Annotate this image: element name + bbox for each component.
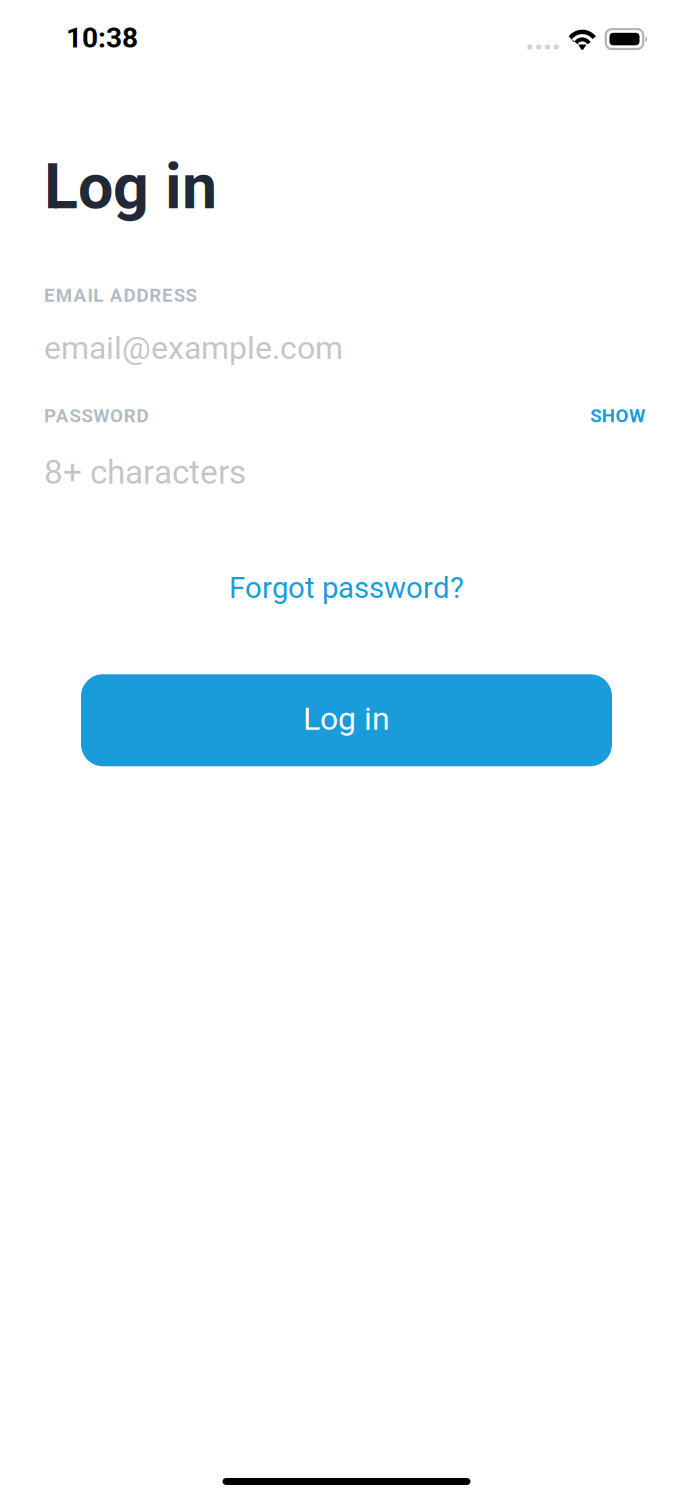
button[interactable]: SHOW <box>590 405 645 427</box>
button[interactable]: 8+ characters <box>44 453 649 492</box>
staticText: Forgot password? <box>229 571 464 605</box>
staticText: Log in <box>303 700 390 737</box>
staticText: Log in <box>44 150 217 223</box>
staticText: email@example.com <box>44 329 343 367</box>
staticText: 10:38 <box>66 22 138 54</box>
staticText: 8+ characters <box>44 453 246 492</box>
staticText: EMAIL ADDRESS <box>44 284 197 306</box>
button[interactable]: EMAIL ADDRESS <box>44 284 649 367</box>
button[interactable]: Forgot password? <box>44 571 649 605</box>
staticText: PASSWORD <box>44 405 149 427</box>
button[interactable]: Log in <box>44 674 649 766</box>
staticText: SHOW <box>590 405 645 427</box>
